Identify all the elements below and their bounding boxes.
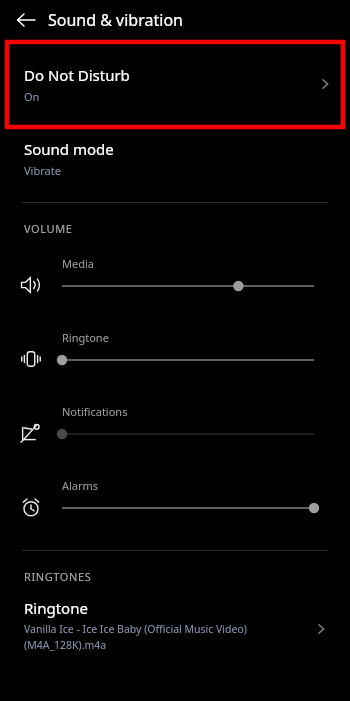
button[interactable]: Ringtone bbox=[0, 330, 350, 376]
staticText: Notifications bbox=[62, 404, 128, 419]
staticText: RINGTONES bbox=[24, 569, 92, 584]
staticText: Do Not Disturb bbox=[24, 65, 130, 85]
staticText: (M4A_128K).m4a bbox=[24, 638, 107, 652]
button[interactable]: Media bbox=[0, 256, 350, 302]
button[interactable]: Back bbox=[10, 4, 42, 36]
staticText: Media bbox=[62, 256, 94, 271]
staticText: Sound & vibration bbox=[48, 9, 183, 31]
staticText: On bbox=[24, 89, 40, 104]
button[interactable]: Sound mode bbox=[0, 128, 350, 188]
button[interactable]: Do Not Disturb bbox=[0, 40, 350, 128]
staticText: VOLUME bbox=[24, 221, 73, 236]
button[interactable]: Notifications bbox=[0, 404, 350, 450]
staticText: Ringtone bbox=[62, 330, 109, 345]
staticText: Vanilla Ice - Ice Ice Baby (Official Mus… bbox=[24, 622, 247, 636]
staticText: Alarms bbox=[62, 478, 99, 493]
staticText: Sound mode bbox=[24, 139, 114, 159]
staticText: Ringtone bbox=[24, 598, 88, 618]
button[interactable]: Ringtone bbox=[0, 598, 350, 664]
button[interactable]: Alarms bbox=[0, 478, 350, 524]
staticText: Vibrate bbox=[24, 163, 61, 178]
